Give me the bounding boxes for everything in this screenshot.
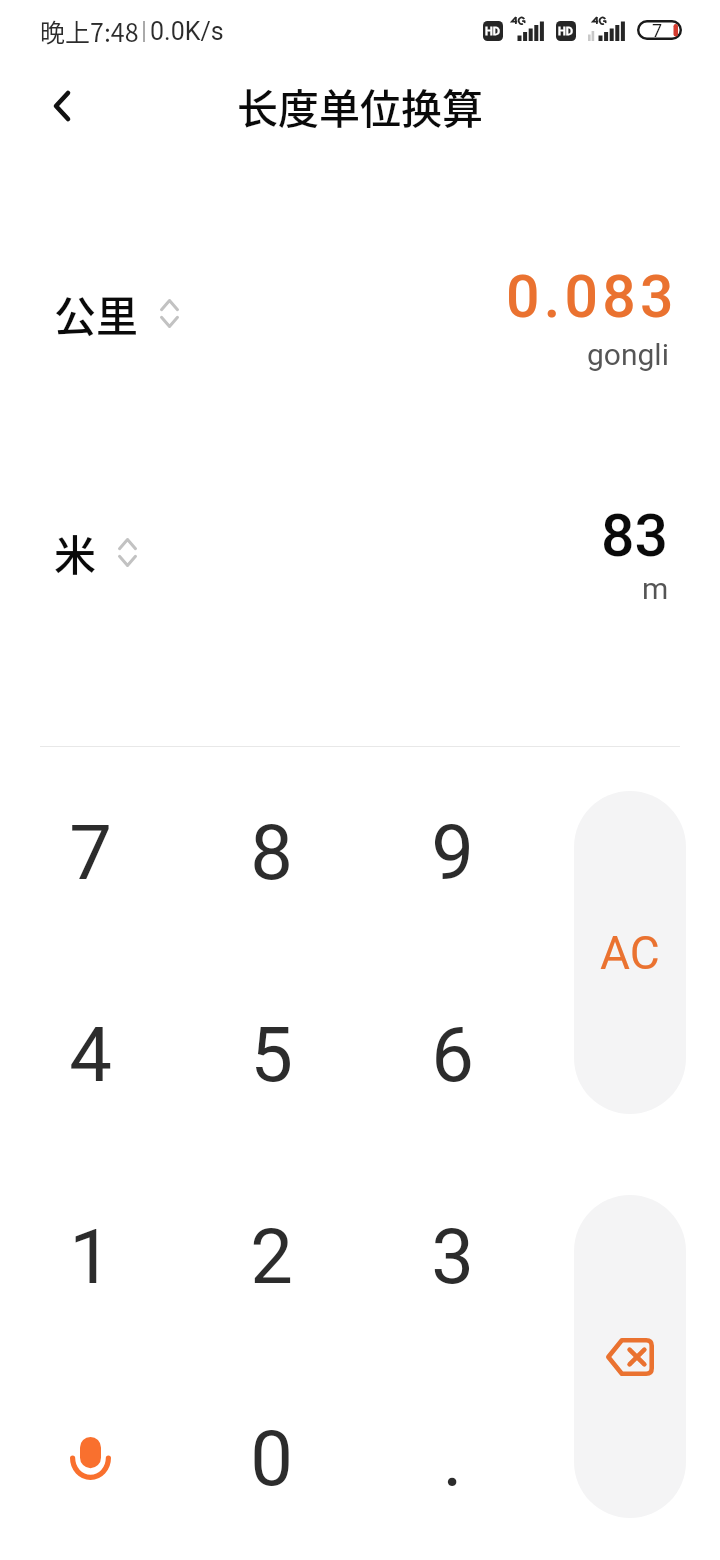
button[interactable]: 0 [191,1370,351,1546]
staticText: 9 [431,808,474,897]
staticText: HD [485,25,501,38]
button[interactable]: Back [26,69,98,141]
staticText: 1 [69,1212,112,1301]
staticText: 5 [250,1010,293,1099]
staticText: 0 [250,1414,293,1503]
button[interactable]: 7 [10,764,170,940]
button[interactable]: 5 [191,966,351,1142]
button[interactable]: Backspace [574,1195,686,1518]
staticText: 83 [601,501,669,565]
button[interactable]: 1 [10,1168,170,1344]
button[interactable]: 4 [10,966,170,1142]
staticText: 2 [250,1212,293,1301]
button[interactable]: AC [574,791,686,1114]
button[interactable]: 3 [372,1168,532,1344]
staticText: gongli [587,337,669,372]
other: Voice input [64,1432,116,1484]
button[interactable]: 米 [54,516,137,588]
staticText: 7 [69,808,112,897]
staticText: 3 [431,1212,474,1301]
staticText: 公里 [54,283,139,344]
staticText: m [642,571,669,606]
staticText: 7 [652,20,663,40]
button[interactable]: 9 [372,764,532,940]
staticText: HD [558,25,574,38]
button[interactable]: . [372,1370,532,1546]
button[interactable]: Voice input [10,1370,170,1546]
staticText: 6 [431,1010,474,1099]
staticText: 8 [250,808,293,897]
button[interactable]: 6 [372,966,532,1142]
button[interactable]: 8 [191,764,351,940]
staticText: 4 [69,1010,112,1099]
staticText: 米 [54,522,97,583]
button[interactable]: 公里 [54,277,179,349]
button[interactable]: 2 [191,1168,351,1344]
staticText: 长度单位换算 [237,76,483,135]
staticText: 晚上7:48 [40,13,139,49]
staticText: AC [600,926,660,980]
staticText: . [442,1414,463,1503]
staticText: 0.0K/s [150,17,224,46]
staticText: 0.083 [506,262,678,326]
